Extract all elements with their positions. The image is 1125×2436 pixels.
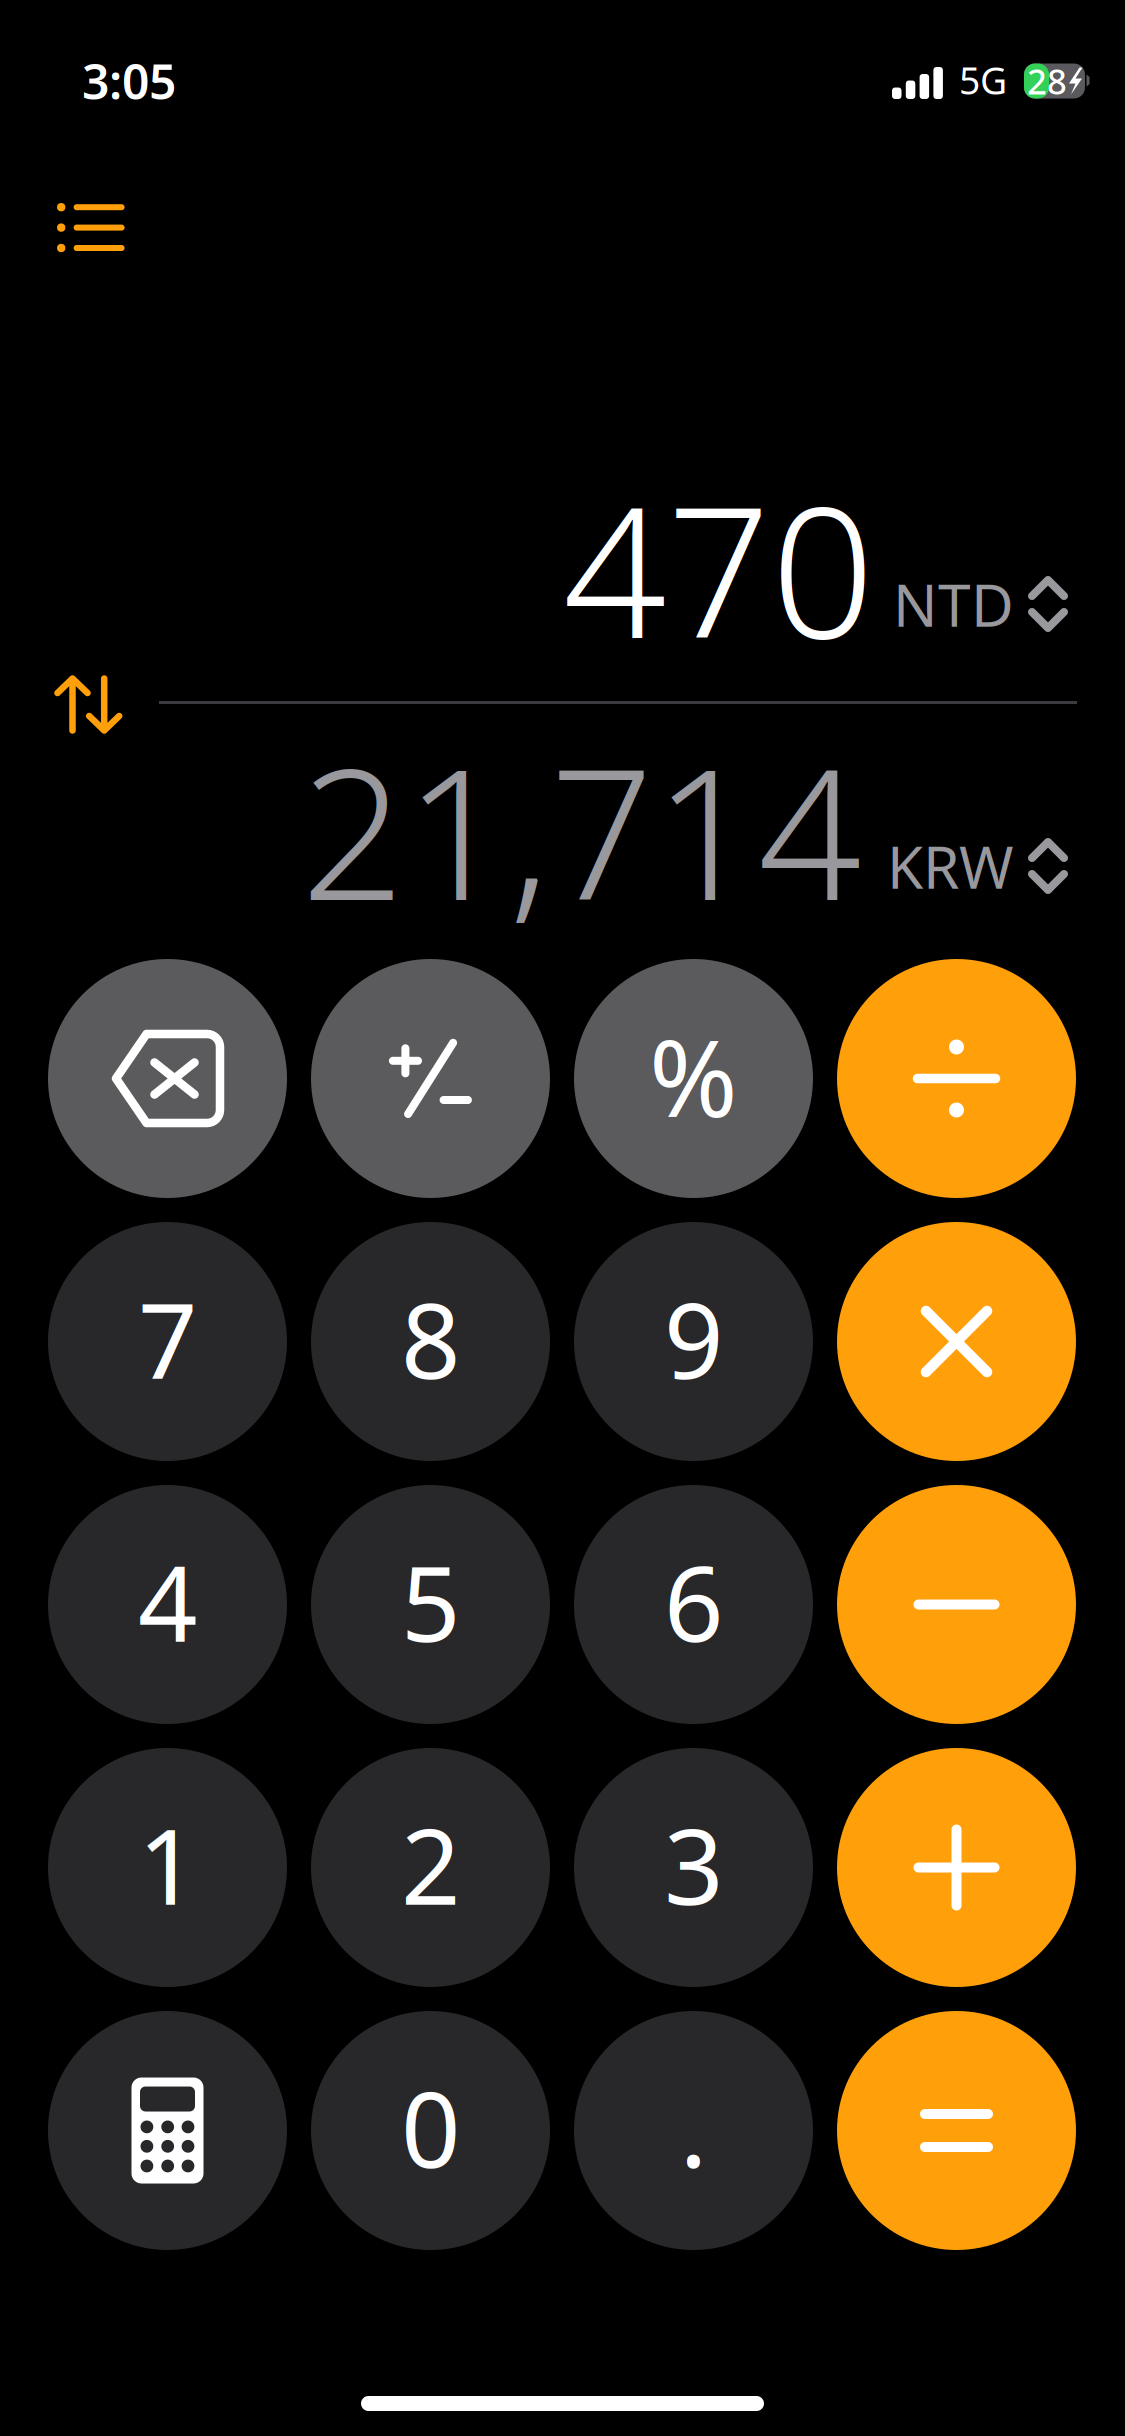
button[interactable]: 8 xyxy=(311,1222,550,1461)
button[interactable]: Plus xyxy=(837,1748,1076,1987)
staticText: 0 xyxy=(401,2058,460,2196)
staticText: % xyxy=(649,1005,738,1146)
button[interactable]: 6 xyxy=(574,1485,813,1724)
staticText: 8 xyxy=(401,1269,460,1407)
button[interactable]: Delete xyxy=(48,959,287,1198)
button[interactable]: Percent xyxy=(574,959,813,1198)
button[interactable]: 5 xyxy=(311,1485,550,1724)
button[interactable]: Minus xyxy=(837,1485,1076,1724)
staticText: 1 xyxy=(138,1795,197,1933)
staticText: 6 xyxy=(664,1532,723,1670)
staticText: 28 xyxy=(1027,58,1067,104)
staticText: 4 xyxy=(138,1532,197,1670)
staticText: 470 xyxy=(563,447,875,688)
staticText: 5G xyxy=(959,55,1007,105)
button[interactable]: Toggle sign xyxy=(311,959,550,1198)
staticText: 2 xyxy=(401,1795,460,1933)
staticText: KRW xyxy=(887,827,1014,905)
button[interactable]: 3 xyxy=(574,1748,813,1987)
staticText: 5 xyxy=(401,1532,460,1670)
button[interactable]: 1 xyxy=(48,1748,287,1987)
staticText: NTD xyxy=(893,565,1014,643)
button[interactable]: 4 xyxy=(48,1485,287,1724)
button[interactable]: Equals xyxy=(837,2011,1076,2250)
button[interactable]: Calculator xyxy=(48,2011,287,2250)
button[interactable]: 0 xyxy=(311,2011,550,2250)
button[interactable]: Swap currencies xyxy=(32,659,145,748)
staticText: 3 xyxy=(664,1795,723,1933)
button[interactable]: KRW xyxy=(877,815,1078,917)
staticText: 9 xyxy=(664,1269,723,1407)
button[interactable]: 7 xyxy=(48,1222,287,1461)
button[interactable]: 2 xyxy=(311,1748,550,1987)
button[interactable]: History xyxy=(27,175,155,280)
button[interactable]: Multiply xyxy=(837,1222,1076,1461)
button[interactable]: 9 xyxy=(574,1222,813,1461)
button[interactable]: Decimal point xyxy=(574,2011,813,2250)
staticText: . xyxy=(679,2058,707,2196)
button[interactable]: Divide xyxy=(837,959,1076,1198)
staticText: 7 xyxy=(138,1269,197,1407)
button[interactable]: NTD xyxy=(883,553,1078,655)
staticText: 3:05 xyxy=(82,49,176,113)
staticText: 21,714 xyxy=(301,709,862,950)
